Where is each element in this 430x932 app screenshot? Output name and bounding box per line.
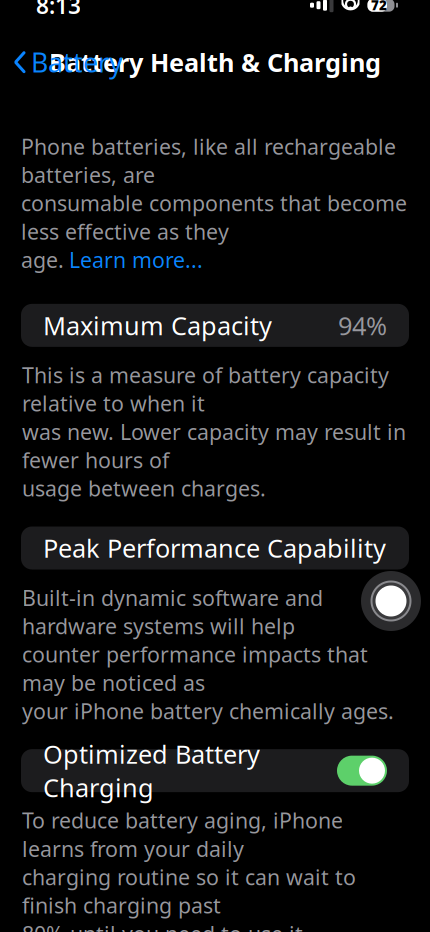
staticText: Battery <box>31 44 123 80</box>
staticText: Built-in dynamic software and hardware s… <box>22 583 323 640</box>
staticText: your iPhone battery chemically ages. <box>22 697 394 725</box>
staticText: counter performance impacts that may be … <box>22 640 368 697</box>
staticText: Battery Health & Charging <box>49 45 381 79</box>
button[interactable]: Optimized Battery Charging <box>21 749 409 792</box>
staticText: charging routine so it can wait to finis… <box>22 863 356 919</box>
staticText: 94% <box>338 308 387 342</box>
staticText: usage between charges. <box>22 474 266 502</box>
staticText: consumable components that become less e… <box>21 189 407 246</box>
staticText: Learn more... <box>69 245 203 274</box>
button[interactable]: Battery <box>0 36 123 88</box>
staticText: To reduce battery aging, iPhone learns f… <box>22 806 343 863</box>
staticText: 80% until you need to use it. <box>22 919 309 932</box>
button[interactable]: Peak Performance Capability <box>21 526 409 569</box>
staticText: Phone batteries, like all rechargeable b… <box>21 132 396 189</box>
button[interactable]: Learn more... <box>69 245 203 274</box>
button[interactable]: Maximum Capacity <box>21 304 409 347</box>
staticText: 72 <box>371 0 387 14</box>
staticText: Peak Performance Capability <box>43 531 386 565</box>
staticText: Maximum Capacity <box>43 308 272 342</box>
staticText: 8:13 <box>36 0 81 20</box>
staticText: was new. Lower capacity may result in fe… <box>22 417 406 474</box>
staticText: age. <box>21 245 64 274</box>
staticText: This is a measure of battery capacity re… <box>22 361 389 417</box>
staticText: Optimized Battery Charging <box>43 737 260 804</box>
button[interactable]: AssistiveTouch <box>361 571 421 631</box>
